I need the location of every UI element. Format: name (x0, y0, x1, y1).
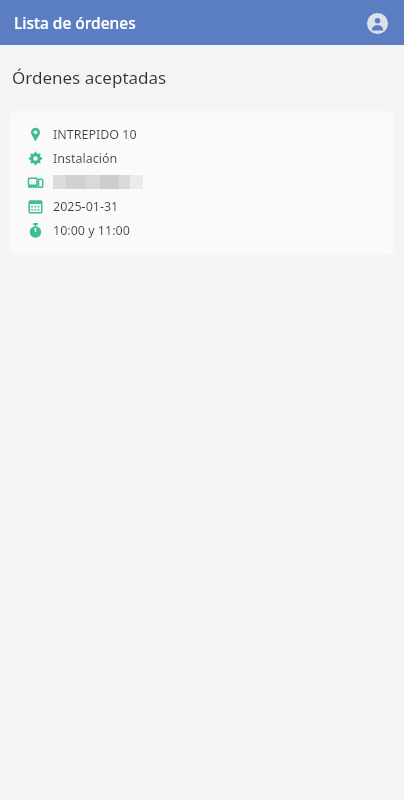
staticText: 2025-01-31 (53, 198, 119, 215)
button[interactable]: INTREPIDO 10 (10, 111, 394, 255)
staticText: INTREPIDO 10 (53, 126, 137, 143)
staticText: Órdenes aceptadas (12, 66, 167, 89)
staticText: Lista de órdenes (14, 12, 136, 33)
staticText: 10:00 y 11:00 (53, 222, 130, 239)
button[interactable]: Account (361, 7, 393, 39)
staticText: Instalación (53, 150, 118, 167)
